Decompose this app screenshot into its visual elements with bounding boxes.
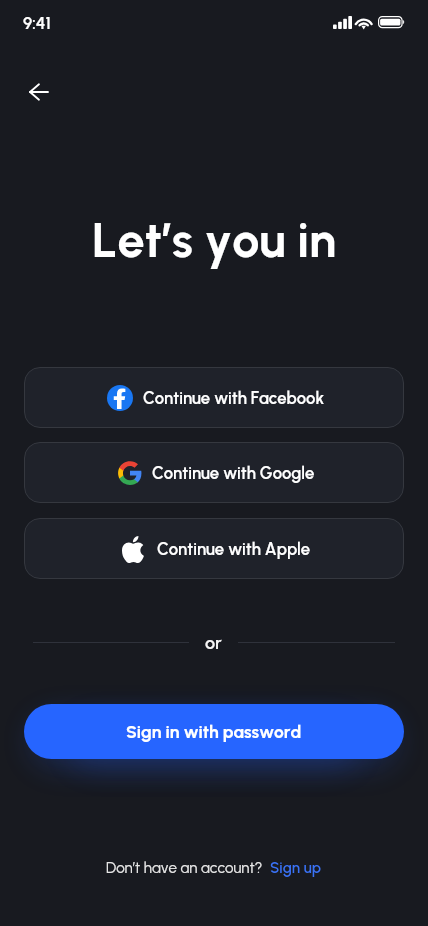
- staticText: or: [205, 632, 222, 654]
- button[interactable]: Sign in with password: [24, 704, 404, 759]
- button[interactable]: Continue with Apple: [24, 518, 404, 579]
- button[interactable]: Continue with Facebook: [24, 367, 404, 428]
- staticText: Sign up: [270, 859, 322, 877]
- staticText: Sign in with password: [126, 721, 302, 742]
- staticText: Continue with Google: [152, 463, 315, 483]
- staticText: 9:41: [23, 13, 51, 33]
- button[interactable]: Sign up: [270, 859, 322, 877]
- staticText: Let’s you in: [0, 211, 428, 269]
- button[interactable]: Continue with Google: [24, 442, 404, 503]
- button[interactable]: Back: [17, 70, 61, 114]
- staticText: Continue with Apple: [157, 539, 311, 559]
- staticText: Don’t have an account?: [106, 859, 263, 877]
- staticText: Continue with Facebook: [143, 388, 325, 408]
